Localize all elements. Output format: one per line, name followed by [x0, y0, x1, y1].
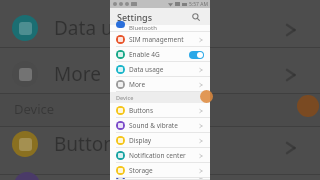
button[interactable]: Enable 4G: [110, 47, 210, 62]
staticText: Notification center: [129, 151, 186, 160]
button[interactable]: Storage: [110, 163, 210, 178]
button[interactable]: Data usage: [110, 62, 210, 77]
button[interactable]: Notification center: [110, 148, 210, 163]
button[interactable]: Bluetooth: [110, 25, 210, 32]
button[interactable]: Display: [110, 133, 210, 148]
staticText: Bluetooth: [129, 24, 157, 31]
staticText: Battery: [129, 178, 152, 180]
staticText: Storage: [129, 166, 153, 175]
button[interactable]: Sound & vibrate: [110, 118, 210, 133]
button[interactable]: More: [110, 77, 210, 92]
staticText: Display: [129, 136, 152, 145]
button[interactable]: Buttons: [110, 103, 210, 118]
staticText: SIM management: [129, 35, 184, 44]
button[interactable]: SIM management: [110, 32, 210, 47]
staticText: Settings: [117, 11, 153, 23]
staticText: More: [54, 61, 101, 87]
staticText: Data usa: [54, 15, 133, 41]
staticText: More: [129, 80, 146, 89]
staticText: Buttons: [54, 131, 125, 157]
staticText: Enable 4G: [129, 50, 160, 59]
button[interactable]: Battery: [110, 178, 210, 180]
button[interactable]: Search: [189, 10, 203, 24]
staticText: Device: [116, 94, 134, 101]
staticText: Sound & vibrate: [129, 121, 178, 130]
staticText: Device: [14, 100, 55, 118]
staticText: Data usage: [129, 65, 164, 74]
staticText: Buttons: [129, 106, 153, 115]
staticText: 5:57 AM: [189, 1, 208, 8]
button[interactable]: Enable 4G toggle: [189, 51, 204, 59]
